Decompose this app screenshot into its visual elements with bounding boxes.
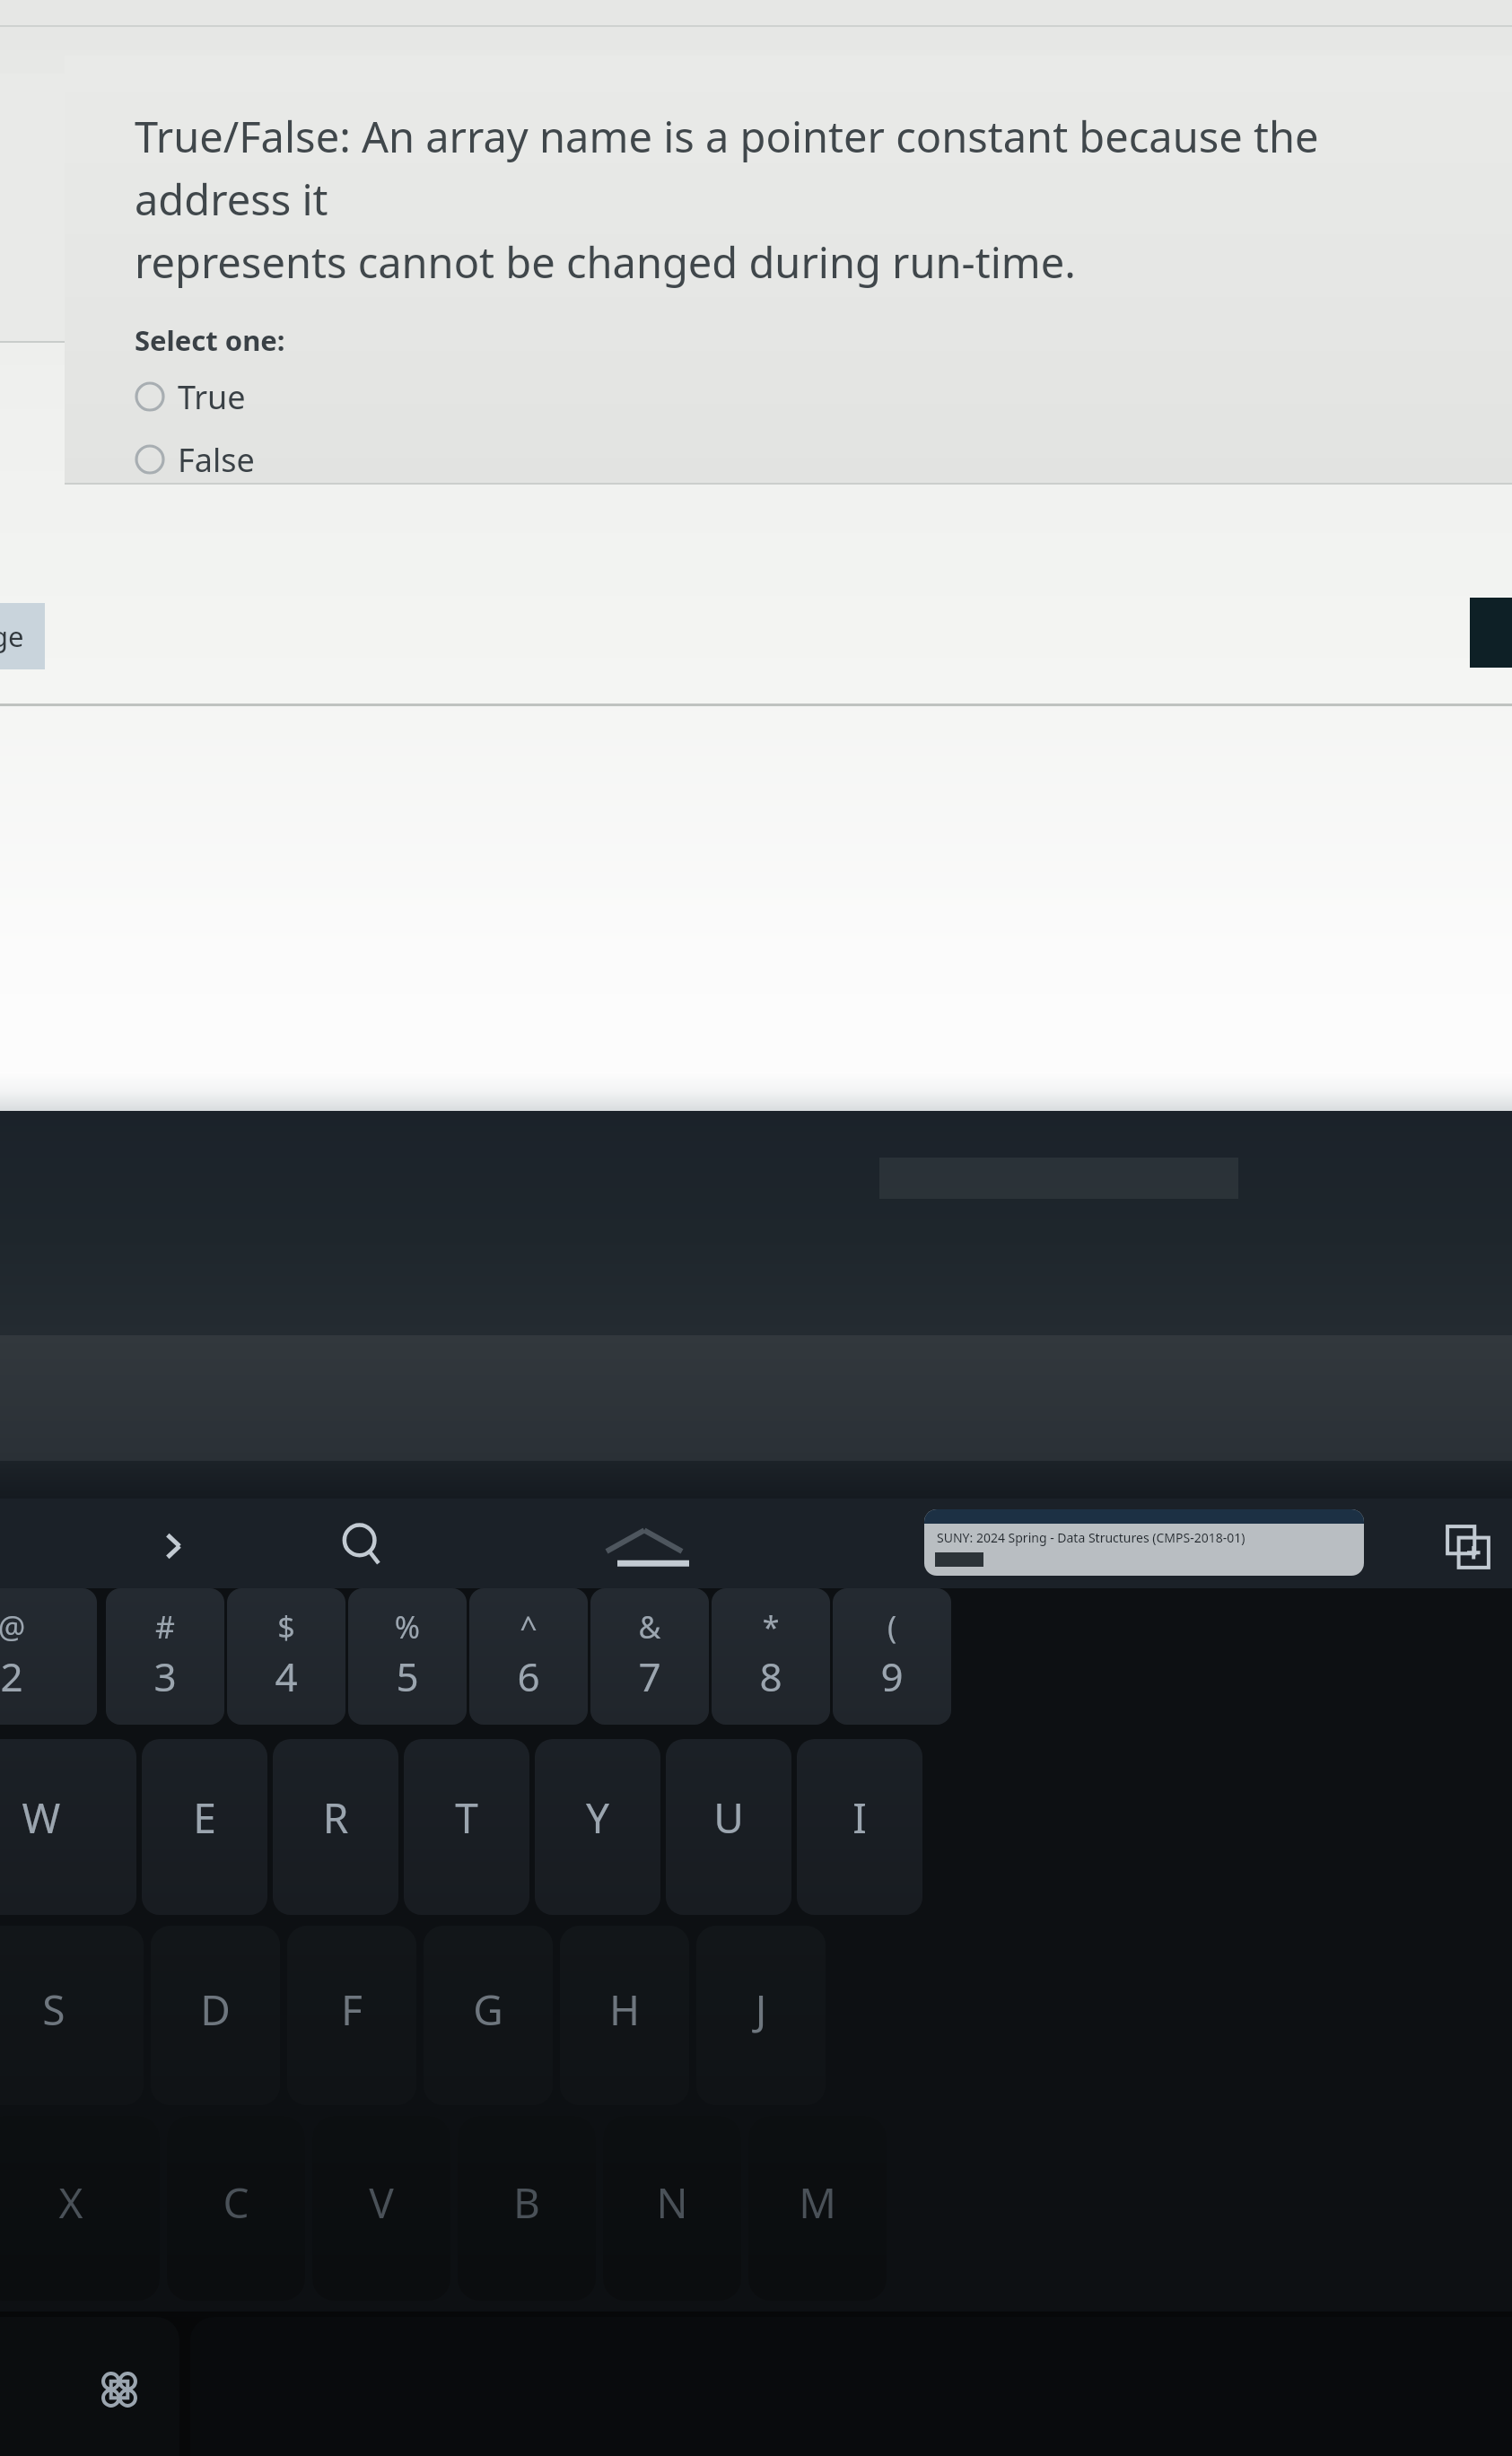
staticText: J	[696, 1981, 826, 2038]
staticText: V	[312, 2174, 450, 2231]
staticText: H	[560, 1981, 689, 2038]
staticText: X	[0, 2174, 160, 2231]
button[interactable]: Forward	[142, 1515, 205, 1578]
staticText: #	[106, 1606, 224, 1648]
staticText: S	[0, 1981, 144, 2038]
staticText: C	[167, 2174, 305, 2231]
staticText: @	[0, 1606, 97, 1648]
button[interactable]: X key	[0, 2116, 160, 2301]
button[interactable]: F key	[287, 1926, 416, 2105]
staticText: represents cannot be changed during run-…	[135, 233, 1076, 291]
button[interactable]: False	[135, 436, 255, 483]
button[interactable]: J key	[696, 1926, 826, 2105]
staticText: &	[590, 1606, 709, 1648]
button[interactable]: ge	[0, 603, 45, 669]
staticText: 3	[106, 1649, 224, 1703]
button[interactable]: Y key	[535, 1739, 660, 1915]
staticText: W	[0, 1789, 136, 1846]
button[interactable]: 7 key	[590, 1588, 709, 1725]
staticText: True/False: An array name is a pointer c…	[135, 108, 1476, 228]
staticText: 4	[227, 1649, 345, 1703]
button[interactable]: B key	[458, 2116, 596, 2301]
button[interactable]: New tab	[1432, 1511, 1504, 1583]
button[interactable]: C key	[167, 2116, 305, 2301]
staticText: F	[287, 1981, 416, 2038]
button[interactable]: Command key	[0, 2317, 179, 2456]
staticText: 8	[712, 1649, 830, 1703]
staticText: $	[227, 1606, 345, 1648]
button[interactable]: SUNY: 2024 Spring - Data Structures (CMP…	[924, 1509, 1364, 1576]
button[interactable]: G key	[424, 1926, 553, 2105]
staticText: SUNY: 2024 Spring - Data Structures (CMP…	[937, 1529, 1245, 1546]
button[interactable]: 8 key	[712, 1588, 830, 1725]
staticText: Y	[535, 1789, 660, 1846]
staticText: 9	[833, 1649, 951, 1703]
staticText: %	[348, 1606, 467, 1648]
staticText: 6	[469, 1649, 588, 1703]
staticText: I	[797, 1789, 922, 1846]
staticText: 2	[0, 1649, 97, 1703]
button[interactable]: 6 key	[469, 1588, 588, 1725]
staticText: E	[142, 1789, 267, 1846]
button[interactable]: U key	[666, 1739, 791, 1915]
staticText: G	[424, 1981, 553, 2038]
staticText: True	[178, 375, 246, 419]
staticText: Select one:	[135, 321, 285, 359]
button[interactable]: H key	[560, 1926, 689, 2105]
staticText: T	[404, 1789, 529, 1846]
staticText: (	[833, 1606, 951, 1648]
button[interactable]: 4 key	[227, 1588, 345, 1725]
staticText: 7	[590, 1649, 709, 1703]
button[interactable]: R key	[273, 1739, 398, 1915]
button[interactable]: 9 key	[833, 1588, 951, 1725]
staticText: False	[178, 438, 255, 482]
staticText: *	[712, 1606, 830, 1648]
button[interactable]: V key	[312, 2116, 450, 2301]
button[interactable]: W key	[0, 1739, 136, 1915]
staticText: R	[273, 1789, 398, 1846]
button[interactable]: 5 key	[348, 1588, 467, 1725]
button[interactable]: 2 key	[0, 1588, 97, 1725]
button[interactable]: Search	[328, 1511, 397, 1579]
staticText: U	[666, 1789, 791, 1846]
button[interactable]: I key	[797, 1739, 922, 1915]
staticText: N	[603, 2174, 741, 2231]
staticText: 5	[348, 1649, 467, 1703]
button[interactable]: D key	[151, 1926, 280, 2105]
button[interactable]: T key	[404, 1739, 529, 1915]
button[interactable]: S key	[0, 1926, 144, 2105]
staticText: B	[458, 2174, 596, 2231]
staticText: M	[748, 2174, 887, 2231]
button[interactable]: True	[135, 373, 246, 420]
staticText: D	[151, 1981, 280, 2038]
button[interactable]: E key	[142, 1739, 267, 1915]
button[interactable]: Reader	[546, 1513, 761, 1576]
button[interactable]: M key	[748, 2116, 887, 2301]
staticText: ^	[469, 1606, 588, 1648]
button[interactable]: 3 key	[106, 1588, 224, 1725]
button[interactable]: N key	[603, 2116, 741, 2301]
staticText: ge	[0, 617, 24, 655]
